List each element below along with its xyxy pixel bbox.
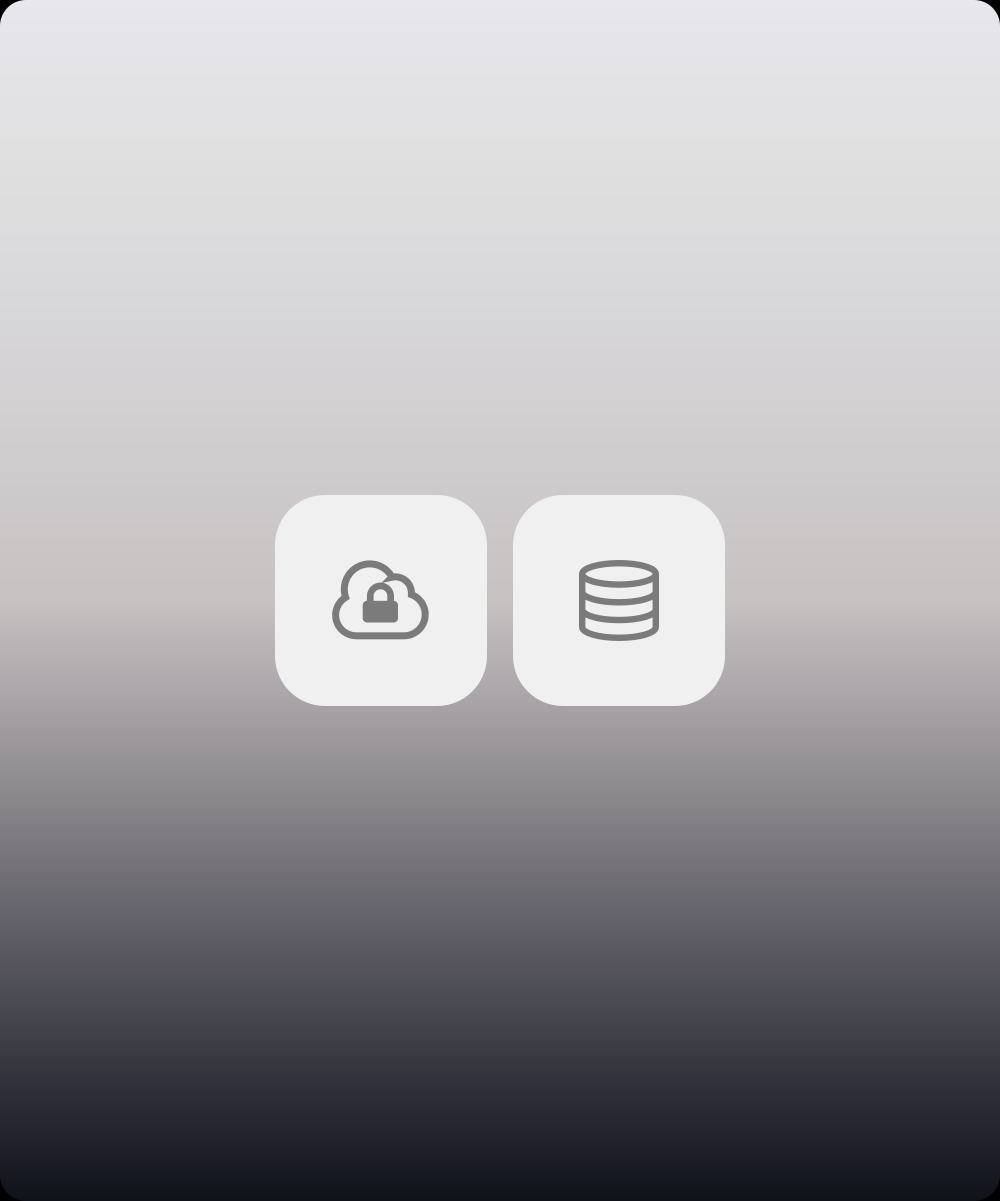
button[interactable]: Private Cloud (275, 495, 487, 706)
button[interactable]: Database (513, 495, 725, 706)
